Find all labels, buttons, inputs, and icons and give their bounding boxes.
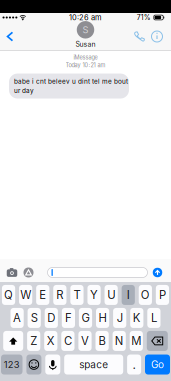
button[interactable]: Call [132, 27, 146, 45]
button[interactable]: W [19, 285, 32, 305]
button[interactable]: X [44, 331, 57, 351]
button[interactable]: C [61, 331, 74, 351]
staticText: I [127, 288, 130, 302]
staticText: Q [4, 288, 13, 302]
button[interactable]: Q [2, 285, 15, 305]
staticText: 123 [4, 359, 20, 370]
button[interactable]: Shift [3, 331, 23, 351]
staticText: C [64, 334, 72, 348]
button[interactable]: K [130, 308, 143, 328]
button[interactable]: L [147, 308, 160, 328]
button[interactable]: M [130, 331, 143, 351]
staticText: V [81, 334, 89, 348]
button[interactable]: I [122, 285, 135, 305]
staticText: N [115, 334, 124, 348]
staticText: W [20, 288, 31, 302]
button[interactable]: Emoji [26, 354, 41, 374]
staticText: P [159, 288, 166, 302]
staticText: F [65, 311, 72, 325]
staticText: K [133, 311, 141, 325]
button[interactable]: R [53, 285, 66, 305]
staticText: 71% [137, 13, 151, 22]
button[interactable]: G [79, 308, 92, 328]
button[interactable]: A [10, 308, 24, 328]
staticText: S [82, 24, 88, 35]
button[interactable]: S [28, 308, 41, 328]
button[interactable]: Details [150, 27, 164, 45]
staticText: space [79, 358, 108, 371]
staticText: X [47, 334, 55, 348]
staticText: Today 10:21 am [65, 62, 105, 69]
button[interactable]: F [62, 308, 75, 328]
button[interactable]: H [96, 308, 109, 328]
staticText: Y [90, 288, 98, 302]
staticText: A [13, 311, 21, 325]
staticText: Susan [75, 40, 95, 48]
button[interactable]: . [127, 354, 141, 374]
staticText: M [131, 334, 141, 348]
button[interactable]: N [113, 331, 126, 351]
button[interactable]: T [70, 285, 83, 305]
staticText: J [117, 311, 123, 325]
button[interactable]: O [139, 285, 152, 305]
button[interactable]: Delete [147, 331, 168, 351]
staticText: Go [151, 358, 164, 371]
staticText: B [99, 334, 106, 348]
staticText: 10:26 am [69, 13, 102, 22]
staticText: Z [30, 334, 37, 348]
staticText: babe i cnt beleev u dint tel me bout ur … [14, 78, 128, 95]
staticText: U [107, 288, 115, 302]
button[interactable]: U [104, 285, 118, 305]
staticText: iMessage [73, 54, 97, 61]
staticText: L [151, 311, 157, 325]
button[interactable]: Y [87, 285, 101, 305]
button[interactable]: Apps [21, 261, 35, 284]
button[interactable]: Dictation [45, 354, 60, 374]
button[interactable]: 123 [1, 354, 22, 374]
button[interactable]: D [45, 308, 58, 328]
staticText: D [47, 311, 55, 325]
staticText: O [141, 288, 150, 302]
button[interactable]: B [95, 331, 109, 351]
staticText: R [56, 288, 63, 302]
staticText: H [99, 311, 107, 325]
staticText: G [81, 311, 89, 325]
button[interactable]: Z [27, 331, 40, 351]
button[interactable]: space [64, 354, 123, 374]
staticText: T [73, 288, 80, 302]
button[interactable]: Back [0, 27, 20, 45]
button[interactable]: Send [151, 261, 163, 284]
button[interactable]: J [113, 308, 126, 328]
staticText: . [133, 357, 136, 372]
button[interactable]: E [36, 285, 49, 305]
button[interactable]: Camera [3, 261, 20, 284]
button[interactable]: Go [145, 354, 170, 374]
staticText: S [31, 311, 38, 325]
staticText: E [39, 288, 46, 302]
button[interactable]: V [78, 331, 92, 351]
button[interactable]: P [156, 285, 169, 305]
